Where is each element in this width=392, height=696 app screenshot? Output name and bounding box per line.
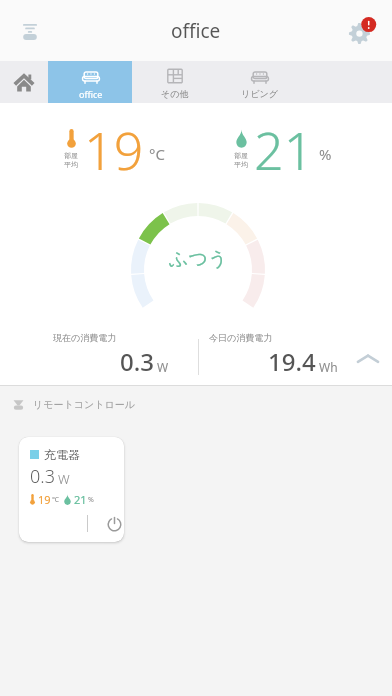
button[interactable]: Power [105, 515, 123, 533]
button[interactable]: Menu [6, 7, 54, 55]
staticText: その他 [161, 88, 189, 99]
button[interactable]: Collapse [352, 343, 384, 375]
button[interactable]: その他 [132, 61, 217, 103]
staticText: 部屋 [234, 151, 248, 160]
staticText: 現在の消費電力 [53, 332, 117, 343]
staticText: 充電器 [44, 447, 80, 462]
staticText: 19 [84, 114, 144, 184]
staticText: 今日の消費電力 [209, 332, 273, 343]
staticText: W [58, 470, 70, 488]
button[interactable]: office [48, 61, 133, 103]
button[interactable]: Home [0, 61, 48, 103]
button[interactable]: Settings [338, 7, 386, 55]
button[interactable]: リビング [217, 61, 302, 103]
staticText: リモートコントロール [33, 398, 135, 411]
staticText: 0.3 [120, 345, 154, 378]
staticText: % [319, 144, 332, 164]
staticText: 19 [38, 492, 51, 507]
staticText: ℃ [52, 495, 59, 505]
staticText: office [171, 18, 221, 44]
staticText: 21 [74, 492, 87, 507]
staticText: 0.3 [30, 464, 55, 489]
staticText: 21 [254, 114, 314, 184]
button[interactable]: 充電器 [19, 437, 124, 542]
staticText: % [88, 495, 94, 505]
staticText: ふつう [169, 247, 228, 271]
staticText: W [157, 359, 169, 375]
staticText: 19.4 [268, 345, 316, 378]
staticText: Wh [319, 359, 338, 375]
staticText: office [79, 88, 103, 100]
staticText: °C [149, 144, 165, 164]
staticText: リビング [241, 88, 278, 99]
staticText: 平均 [64, 160, 78, 169]
staticText: 部屋 [64, 151, 78, 160]
staticText: 平均 [234, 160, 248, 169]
